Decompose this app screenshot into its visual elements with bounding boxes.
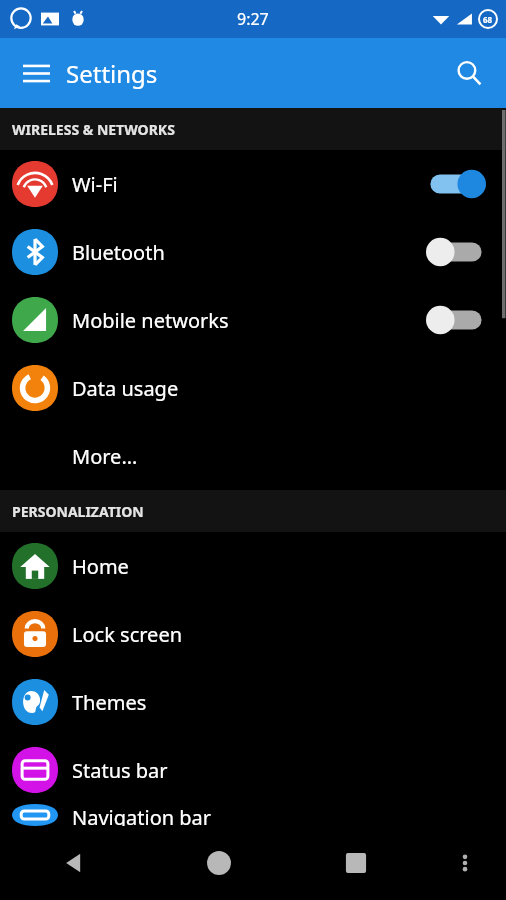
button[interactable]: Themes <box>0 668 506 736</box>
button[interactable]: Home <box>150 826 287 900</box>
button[interactable]: Search <box>446 50 492 96</box>
staticText: 68 <box>483 14 493 25</box>
button[interactable]: Recent apps <box>287 826 424 900</box>
button[interactable]: More options <box>424 826 506 900</box>
staticText: Home <box>72 553 488 580</box>
staticText: Bluetooth <box>72 239 424 266</box>
button[interactable]: Home <box>0 532 506 600</box>
staticText: Lock screen <box>72 621 488 648</box>
staticText: Status bar <box>72 757 488 784</box>
button[interactable]: Lock screen <box>0 600 506 668</box>
staticText: Data usage <box>72 375 488 402</box>
staticText: More… <box>72 443 488 470</box>
staticText: Navigation bar <box>72 804 488 826</box>
button[interactable]: More… <box>0 422 506 490</box>
button[interactable]: Open navigation drawer <box>14 51 58 95</box>
button[interactable]: Navigation bar <box>0 804 506 826</box>
button[interactable]: Mobile networks <box>0 286 506 354</box>
staticText: 9:27 <box>237 8 269 30</box>
staticText: Mobile networks <box>72 307 424 334</box>
staticText: Wi-Fi <box>72 171 424 198</box>
staticText: PERSONALIZATION <box>12 502 144 521</box>
button[interactable]: Bluetooth <box>0 218 506 286</box>
button[interactable]: Status bar <box>0 736 506 804</box>
button[interactable]: Wi-Fi <box>0 150 506 218</box>
button[interactable]: Back <box>0 826 150 900</box>
button[interactable]: Data usage <box>0 354 506 422</box>
staticText: WIRELESS & NETWORKS <box>12 120 175 139</box>
staticText: Settings <box>66 57 158 90</box>
staticText: Themes <box>72 689 488 716</box>
